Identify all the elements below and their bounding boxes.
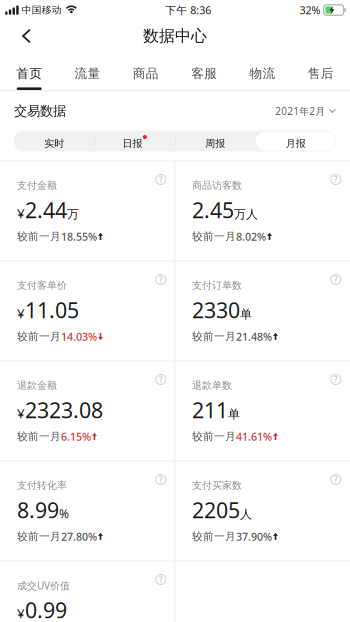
- staticText: 14.03%: [61, 329, 97, 344]
- staticText: 支付金额: [17, 179, 57, 192]
- button[interactable]: 日报: [94, 130, 175, 151]
- staticText: 单: [240, 307, 252, 322]
- staticText: 支付买家数: [192, 479, 242, 492]
- staticText: 周报: [205, 137, 225, 150]
- button[interactable]: 物流: [233, 52, 292, 90]
- staticText: ?: [159, 574, 163, 585]
- staticText: 商品访客数: [192, 179, 242, 192]
- staticText: 商品: [133, 65, 159, 81]
- staticText: 实时: [44, 137, 64, 150]
- staticText: ?: [334, 474, 338, 485]
- staticText: 2021年2月: [275, 104, 325, 118]
- staticText: 27.80%: [61, 529, 97, 544]
- staticText: 37.90%: [236, 529, 272, 544]
- staticText: 11.05: [25, 295, 79, 325]
- staticText: 0.99: [25, 595, 67, 622]
- staticText: ?: [159, 374, 163, 385]
- staticText: 较前一月: [17, 530, 61, 543]
- staticText: 较前一月: [192, 330, 236, 343]
- staticText: 2330: [192, 295, 240, 325]
- staticText: 较前一月: [17, 230, 61, 243]
- staticText: 中国移动: [22, 4, 62, 16]
- staticText: 较前一月: [17, 330, 61, 343]
- staticText: 退款单数: [192, 379, 232, 392]
- staticText: 21.48%: [236, 329, 272, 344]
- staticText: 2205: [192, 495, 240, 525]
- staticText: 交易数据: [14, 103, 66, 119]
- staticText: 日报: [122, 137, 142, 150]
- staticText: 较前一月: [192, 430, 236, 443]
- staticText: 6.15%: [61, 429, 91, 444]
- staticText: 8.99: [17, 495, 59, 525]
- staticText: 售后: [308, 65, 334, 81]
- staticText: ?: [334, 274, 338, 285]
- staticText: 客服: [191, 65, 217, 81]
- staticText: 支付订单数: [192, 279, 242, 292]
- staticText: 8.02%: [236, 229, 266, 244]
- staticText: 2.44: [25, 195, 67, 225]
- staticText: 人: [240, 507, 252, 522]
- staticText: 成交UV价值: [17, 579, 70, 592]
- staticText: 首页: [16, 65, 42, 81]
- staticText: ?: [334, 174, 338, 185]
- staticText: 数据中心: [143, 26, 207, 46]
- staticText: 单: [228, 407, 240, 422]
- staticText: ¥: [17, 404, 25, 422]
- staticText: 2323.08: [25, 395, 103, 425]
- button[interactable]: 月报: [255, 130, 336, 151]
- staticText: ¥: [17, 304, 25, 322]
- button[interactable]: 首页: [0, 52, 58, 90]
- staticText: ?: [159, 274, 163, 285]
- staticText: ¥: [17, 604, 25, 622]
- staticText: 下午 8:36: [165, 3, 211, 17]
- staticText: 支付客单价: [17, 279, 67, 292]
- staticText: 18.55%: [61, 229, 97, 244]
- staticText: 32%: [299, 3, 320, 17]
- staticText: ?: [159, 174, 163, 185]
- staticText: 万: [67, 207, 79, 222]
- button[interactable]: 商品: [117, 52, 175, 90]
- staticText: 2.45: [192, 195, 234, 225]
- staticText: 41.61%: [236, 429, 272, 444]
- staticText: 较前一月: [192, 530, 236, 543]
- button[interactable]: 实时: [14, 130, 94, 151]
- staticText: 物流: [249, 65, 275, 81]
- staticText: 较前一月: [17, 430, 61, 443]
- staticText: ¥: [17, 204, 25, 222]
- staticText: 较前一月: [192, 230, 236, 243]
- button[interactable]: 流量: [58, 52, 117, 90]
- staticText: %: [59, 505, 69, 522]
- staticText: 月报: [286, 137, 306, 150]
- staticText: 流量: [74, 65, 100, 81]
- staticText: ?: [159, 474, 163, 485]
- staticText: 211: [192, 395, 228, 425]
- button[interactable]: 客服: [175, 52, 233, 90]
- staticText: 万人: [234, 207, 258, 222]
- staticText: 退款金额: [17, 379, 57, 392]
- button[interactable]: 2021年2月: [275, 98, 336, 124]
- staticText: ?: [334, 374, 338, 385]
- button[interactable]: 返回: [0, 20, 53, 52]
- button[interactable]: 售后: [292, 52, 350, 90]
- staticText: 支付转化率: [17, 479, 67, 492]
- button[interactable]: 周报: [175, 130, 255, 151]
